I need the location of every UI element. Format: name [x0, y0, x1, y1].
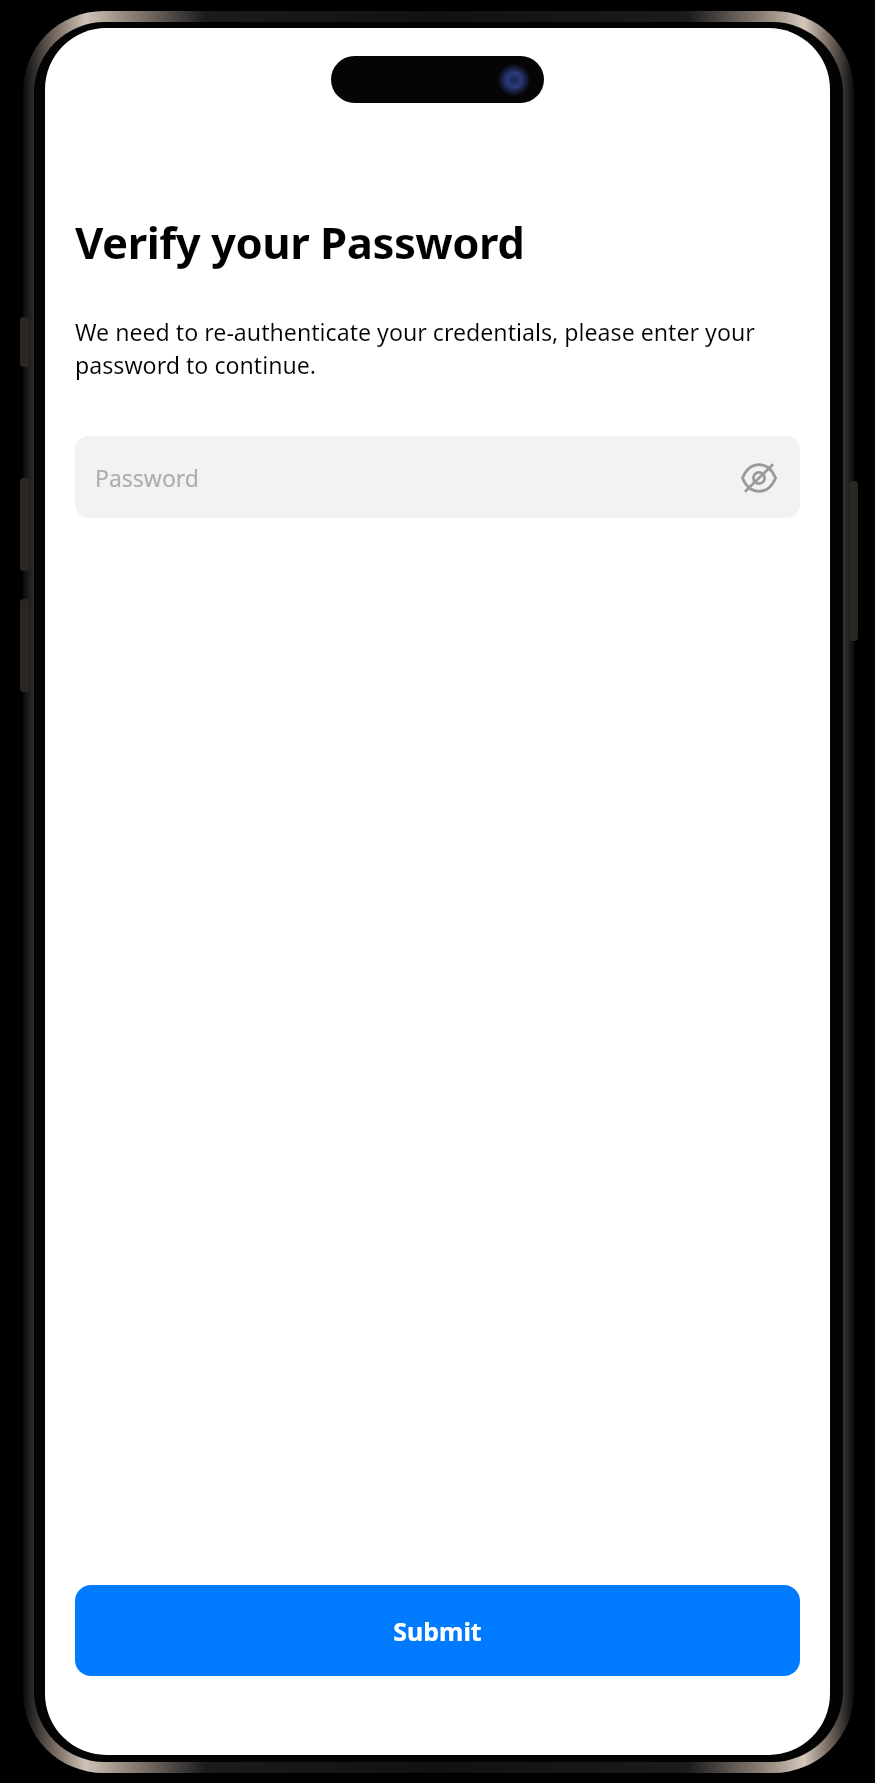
staticText: We need to re-authenticate your credenti…: [75, 316, 800, 380]
staticText: Submit: [393, 1614, 482, 1648]
button[interactable]: Show password: [737, 456, 780, 499]
button[interactable]: Password: [75, 436, 800, 518]
staticText: Verify your Password: [75, 212, 525, 272]
button[interactable]: Submit: [75, 1585, 800, 1676]
staticText: Password: [95, 462, 737, 493]
